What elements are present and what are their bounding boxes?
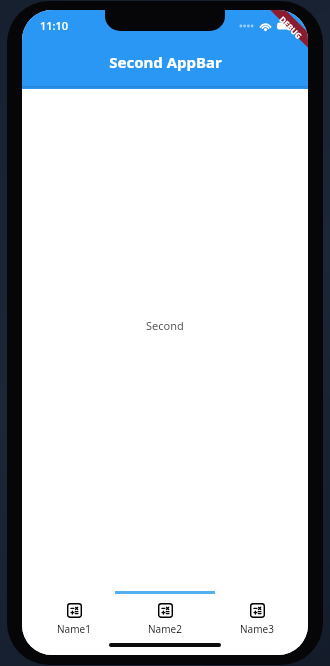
button[interactable]: Calculate xyxy=(125,601,205,638)
staticText: Second xyxy=(146,318,184,333)
staticText: Name3 xyxy=(240,622,274,636)
staticText: Second AppBar xyxy=(109,52,222,72)
other: Calculate xyxy=(158,603,173,618)
button[interactable]: Calculate xyxy=(34,601,114,638)
button[interactable]: Calculate xyxy=(217,601,297,638)
staticText: 11:10 xyxy=(40,18,69,33)
staticText: Name2 xyxy=(148,622,182,636)
staticText: DEBUG xyxy=(277,14,305,41)
other: Calculate xyxy=(67,603,82,618)
other: Calculate xyxy=(250,603,265,618)
staticText: Name1 xyxy=(57,622,91,636)
